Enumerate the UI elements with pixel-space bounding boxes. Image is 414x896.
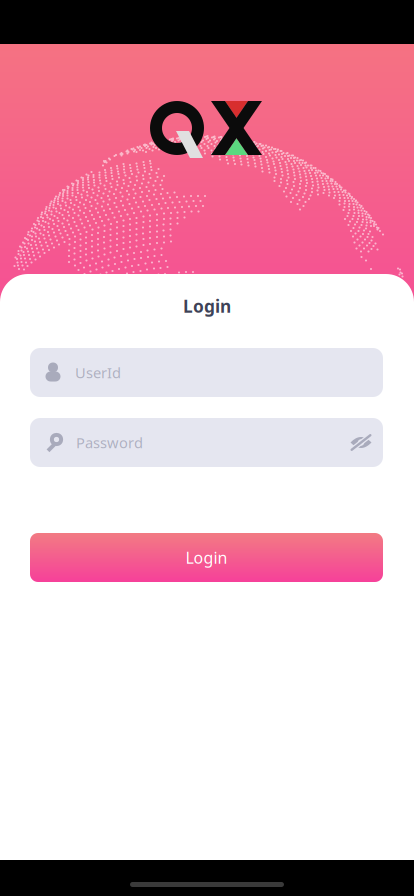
- staticText: UserId: [75, 363, 121, 382]
- button[interactable]: Login: [30, 533, 383, 582]
- staticText: Login: [183, 294, 231, 317]
- staticText: Password: [76, 433, 143, 452]
- button[interactable]: Show password: [339, 420, 383, 464]
- staticText: Login: [185, 547, 227, 568]
